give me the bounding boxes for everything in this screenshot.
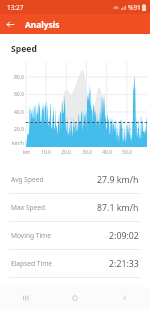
button[interactable]: Home (50, 287, 100, 309)
staticText: km (23, 149, 31, 156)
staticText: 87.1 km/h (97, 202, 139, 214)
button[interactable]: Avg Speed (0, 166, 150, 193)
button[interactable]: Moving Time (0, 222, 150, 249)
staticText: 20.0 (4, 126, 24, 133)
staticText: km/h (3, 140, 24, 147)
staticText: Analysis (25, 19, 60, 30)
staticText: 2:21:33 (109, 258, 139, 270)
staticText: 2:09:02 (109, 230, 139, 242)
staticText: %91 (128, 3, 141, 12)
staticText: 60.0 (4, 91, 24, 98)
staticText: 10.0 (39, 149, 53, 156)
staticText: Max Speed (11, 203, 46, 212)
staticText: 27.9 km/h (97, 174, 139, 186)
button[interactable]: Elapsed Time (0, 250, 150, 277)
button[interactable]: Back (3, 17, 18, 32)
staticText: 20.0 (59, 149, 73, 156)
staticText: 13:27 (7, 3, 24, 12)
staticText: 30.0 (80, 149, 94, 156)
staticText: 40.0 (100, 149, 114, 156)
staticText: Moving Time (11, 231, 51, 240)
button[interactable]: Recent apps (0, 287, 50, 309)
staticText: 80.0 (4, 74, 24, 81)
staticText: Elapsed Time (11, 259, 53, 268)
staticText: Avg Speed (11, 175, 44, 184)
staticText: 40.0 (4, 109, 24, 116)
button[interactable]: Max Speed (0, 194, 150, 221)
staticText: Speed (11, 43, 37, 55)
staticText: 50.0 (120, 149, 134, 156)
